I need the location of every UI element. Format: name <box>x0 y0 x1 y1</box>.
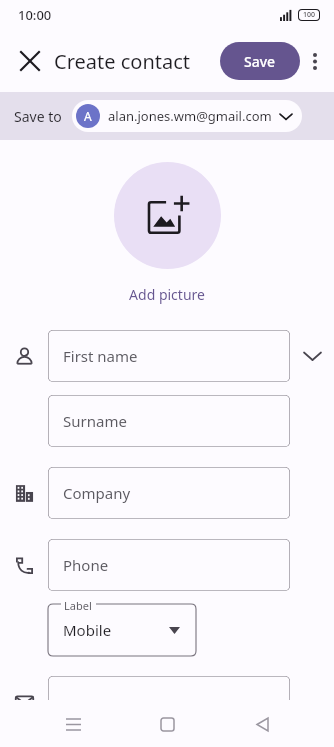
button[interactable]: Surname <box>48 395 290 447</box>
staticText: Phone <box>63 555 109 575</box>
staticText: Save <box>244 52 276 71</box>
button[interactable]: Recent apps <box>51 702 95 746</box>
button[interactable]: First name <box>48 330 290 382</box>
staticText: Company <box>63 483 131 503</box>
button[interactable]: Expand name fields <box>290 330 334 382</box>
staticText: First name <box>63 346 138 366</box>
button[interactable]: Home <box>145 702 189 746</box>
staticText: Mobile <box>63 620 112 640</box>
button[interactable]: Add picture <box>129 285 205 304</box>
button[interactable]: Close <box>8 39 52 83</box>
staticText: Create contact <box>54 48 191 75</box>
button[interactable]: Save <box>220 42 300 80</box>
button[interactable]: A <box>72 100 302 132</box>
staticText: 10:00 <box>18 6 52 24</box>
staticText: Save to <box>14 107 62 126</box>
button[interactable]: Add picture <box>114 162 221 269</box>
staticText: Label <box>64 598 92 613</box>
button[interactable]: Company <box>48 467 290 519</box>
staticText: alan.jones.wm@gmail.com <box>108 107 272 125</box>
staticText: A <box>84 108 92 124</box>
button[interactable] <box>48 676 290 728</box>
button[interactable]: More options <box>298 44 332 78</box>
staticText: Surname <box>63 411 127 431</box>
button[interactable]: Label <box>48 604 196 656</box>
staticText: 100 <box>303 10 316 20</box>
button[interactable]: Back <box>240 702 284 746</box>
button[interactable]: Phone <box>48 539 290 591</box>
